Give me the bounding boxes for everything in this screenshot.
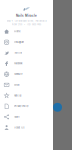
staticText: Privacy Policy: [14, 105, 28, 108]
staticText: Home: [14, 30, 20, 33]
staticText: NSW 2150 • (02) 9633 4455: [12, 23, 41, 26]
button[interactable]: Twitter: [0, 47, 53, 58]
staticText: Rate us: [14, 94, 21, 97]
button[interactable]: Privacy Policy: [0, 101, 53, 112]
button[interactable]: Rate us: [0, 90, 53, 101]
staticText: Instagram: [14, 41, 24, 43]
staticText: About Us: [14, 126, 24, 129]
staticText: Shop 4, 129 Marsden Street, Parramatta: [6, 20, 46, 22]
button[interactable]: About Us: [0, 122, 53, 133]
staticText: Facebook: [14, 62, 22, 65]
button[interactable]: Facebook: [0, 58, 53, 69]
staticText: Email: [14, 83, 20, 86]
staticText: Nails Miracle: [16, 14, 37, 17]
button[interactable]: Home: [0, 26, 53, 37]
staticText: Share: [14, 115, 19, 118]
button[interactable]: Website: [0, 69, 53, 80]
button[interactable]: Share: [0, 112, 53, 122]
button[interactable]: Email: [0, 79, 53, 90]
staticText: Website: [14, 73, 22, 75]
button[interactable]: Instagram: [0, 37, 53, 48]
staticText: Twitter: [14, 51, 22, 54]
